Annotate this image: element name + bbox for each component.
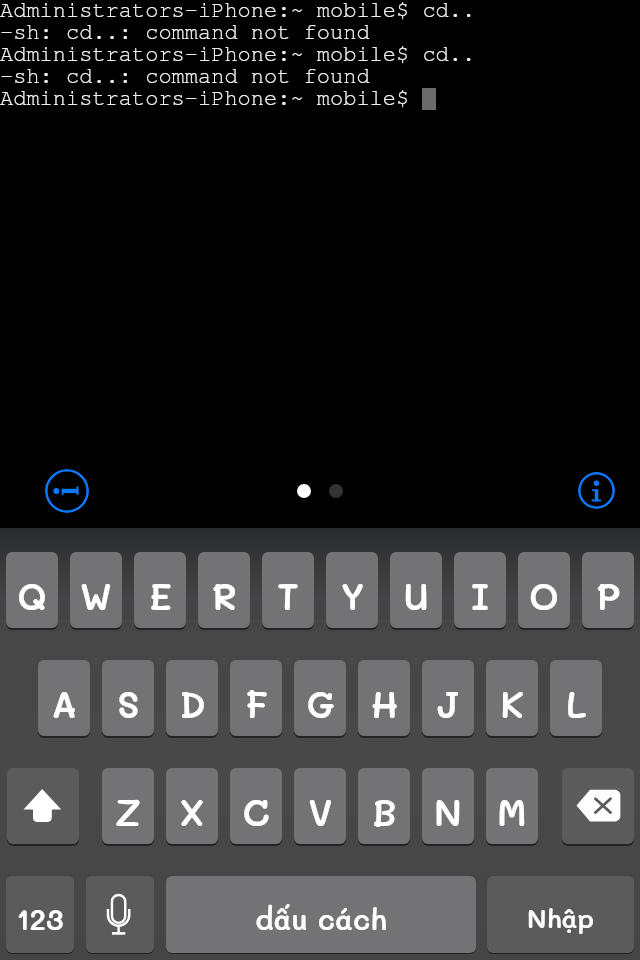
- staticText: K: [500, 679, 524, 727]
- button[interactable]: N: [422, 768, 474, 844]
- staticText: E: [149, 571, 172, 619]
- button[interactable]: D: [166, 660, 218, 736]
- button[interactable]: O: [518, 552, 570, 628]
- staticText: O: [529, 571, 559, 619]
- button[interactable]: Sleep: [45, 469, 89, 513]
- staticText: 123: [16, 899, 64, 937]
- staticText: Y: [340, 571, 365, 619]
- button[interactable]: Backspace: [562, 768, 634, 844]
- button[interactable]: Info: [578, 472, 615, 509]
- staticText: M: [497, 787, 527, 835]
- button[interactable]: Numbers: [6, 876, 74, 953]
- staticText: Nhập: [527, 901, 594, 935]
- staticText: -sh: cd..: command not found: [0, 65, 370, 87]
- staticText: T: [277, 571, 299, 619]
- button[interactable]: M: [486, 768, 538, 844]
- staticText: L: [566, 679, 587, 727]
- button[interactable]: Dictate: [86, 876, 154, 953]
- button[interactable]: Shift: [7, 768, 79, 844]
- button[interactable]: P: [582, 552, 634, 628]
- button[interactable]: R: [198, 552, 250, 628]
- staticText: R: [212, 571, 237, 619]
- staticText: P: [596, 571, 621, 619]
- button[interactable]: dấu cách: [166, 876, 476, 953]
- button[interactable]: K: [486, 660, 538, 736]
- staticText: F: [245, 679, 268, 727]
- button[interactable]: A: [38, 660, 90, 736]
- button[interactable]: L: [550, 660, 602, 736]
- button[interactable]: Y: [326, 552, 378, 628]
- staticText: Q: [17, 571, 47, 619]
- button[interactable]: E: [134, 552, 186, 628]
- button[interactable]: W: [70, 552, 122, 628]
- staticText: V: [308, 787, 333, 835]
- button[interactable]: Z: [102, 768, 154, 844]
- button[interactable]: F: [230, 660, 282, 736]
- staticText: Z: [115, 787, 141, 835]
- staticText: Administrators-iPhone:~ mobile$ cd..: [0, 0, 476, 21]
- staticText: C: [242, 787, 270, 835]
- staticText: A: [51, 679, 77, 727]
- button[interactable]: U: [390, 552, 442, 628]
- staticText: H: [370, 679, 399, 727]
- staticText: X: [179, 787, 205, 835]
- button[interactable]: J: [422, 660, 474, 736]
- staticText: dấu cách: [255, 900, 387, 938]
- staticText: G: [306, 679, 335, 727]
- button[interactable]: Nhập: [487, 876, 634, 953]
- button[interactable]: C: [230, 768, 282, 844]
- button[interactable]: H: [358, 660, 410, 736]
- button[interactable]: X: [166, 768, 218, 844]
- staticText: U: [403, 571, 429, 619]
- button[interactable]: B: [358, 768, 410, 844]
- button[interactable]: T: [262, 552, 314, 628]
- button[interactable]: V: [294, 768, 346, 844]
- staticText: J: [436, 679, 460, 727]
- staticText: I: [471, 571, 489, 619]
- staticText: S: [117, 679, 140, 727]
- button[interactable]: G: [294, 660, 346, 736]
- button[interactable]: I: [454, 552, 506, 628]
- staticText: W: [80, 571, 112, 619]
- staticText: N: [434, 787, 462, 835]
- staticText: D: [179, 679, 206, 727]
- staticText: Administrators-iPhone:~ mobile$: [0, 87, 423, 109]
- staticText: B: [372, 787, 397, 835]
- button[interactable]: Q: [6, 552, 58, 628]
- button[interactable]: S: [102, 660, 154, 736]
- staticText: Administrators-iPhone:~ mobile$ cd..: [0, 43, 476, 65]
- staticText: -sh: cd..: command not found: [0, 21, 370, 43]
